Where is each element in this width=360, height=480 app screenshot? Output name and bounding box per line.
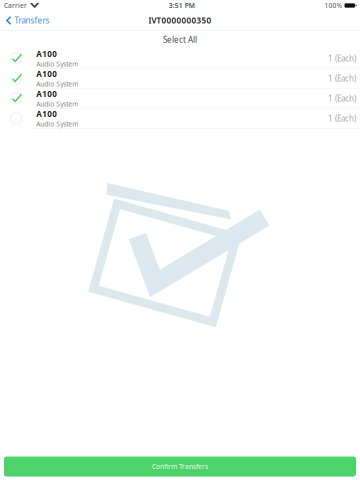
staticText: Audio System bbox=[36, 100, 78, 108]
staticText: A100 bbox=[36, 88, 57, 99]
button[interactable]: A100 bbox=[0, 49, 360, 69]
button[interactable]: A100 bbox=[0, 89, 360, 109]
button[interactable]: Transfers bbox=[0, 11, 55, 30]
button[interactable]: Confirm Transfers bbox=[4, 456, 356, 476]
button[interactable]: Select All bbox=[0, 31, 360, 49]
staticText: Audio System bbox=[36, 60, 78, 68]
staticText: IVT0000000350 bbox=[148, 15, 211, 26]
staticText: A100 bbox=[36, 48, 57, 59]
staticText: Audio System bbox=[36, 120, 78, 128]
staticText: Transfers bbox=[14, 15, 49, 26]
staticText: Audio System bbox=[36, 80, 78, 88]
staticText: 1 (Each) bbox=[328, 73, 356, 84]
staticText: Carrier bbox=[4, 1, 27, 10]
staticText: 3:51 PM bbox=[169, 1, 195, 10]
staticText: A100 bbox=[36, 68, 57, 79]
staticText: 100% bbox=[324, 1, 342, 10]
button[interactable]: A100 bbox=[0, 109, 360, 129]
staticText: Confirm Transfers bbox=[152, 462, 208, 471]
staticText: Select All bbox=[163, 34, 197, 45]
staticText: 1 (Each) bbox=[328, 113, 356, 124]
button[interactable]: A100 bbox=[0, 69, 360, 89]
staticText: 1 (Each) bbox=[328, 53, 356, 64]
staticText: 1 (Each) bbox=[328, 93, 356, 104]
staticText: A100 bbox=[36, 108, 57, 119]
